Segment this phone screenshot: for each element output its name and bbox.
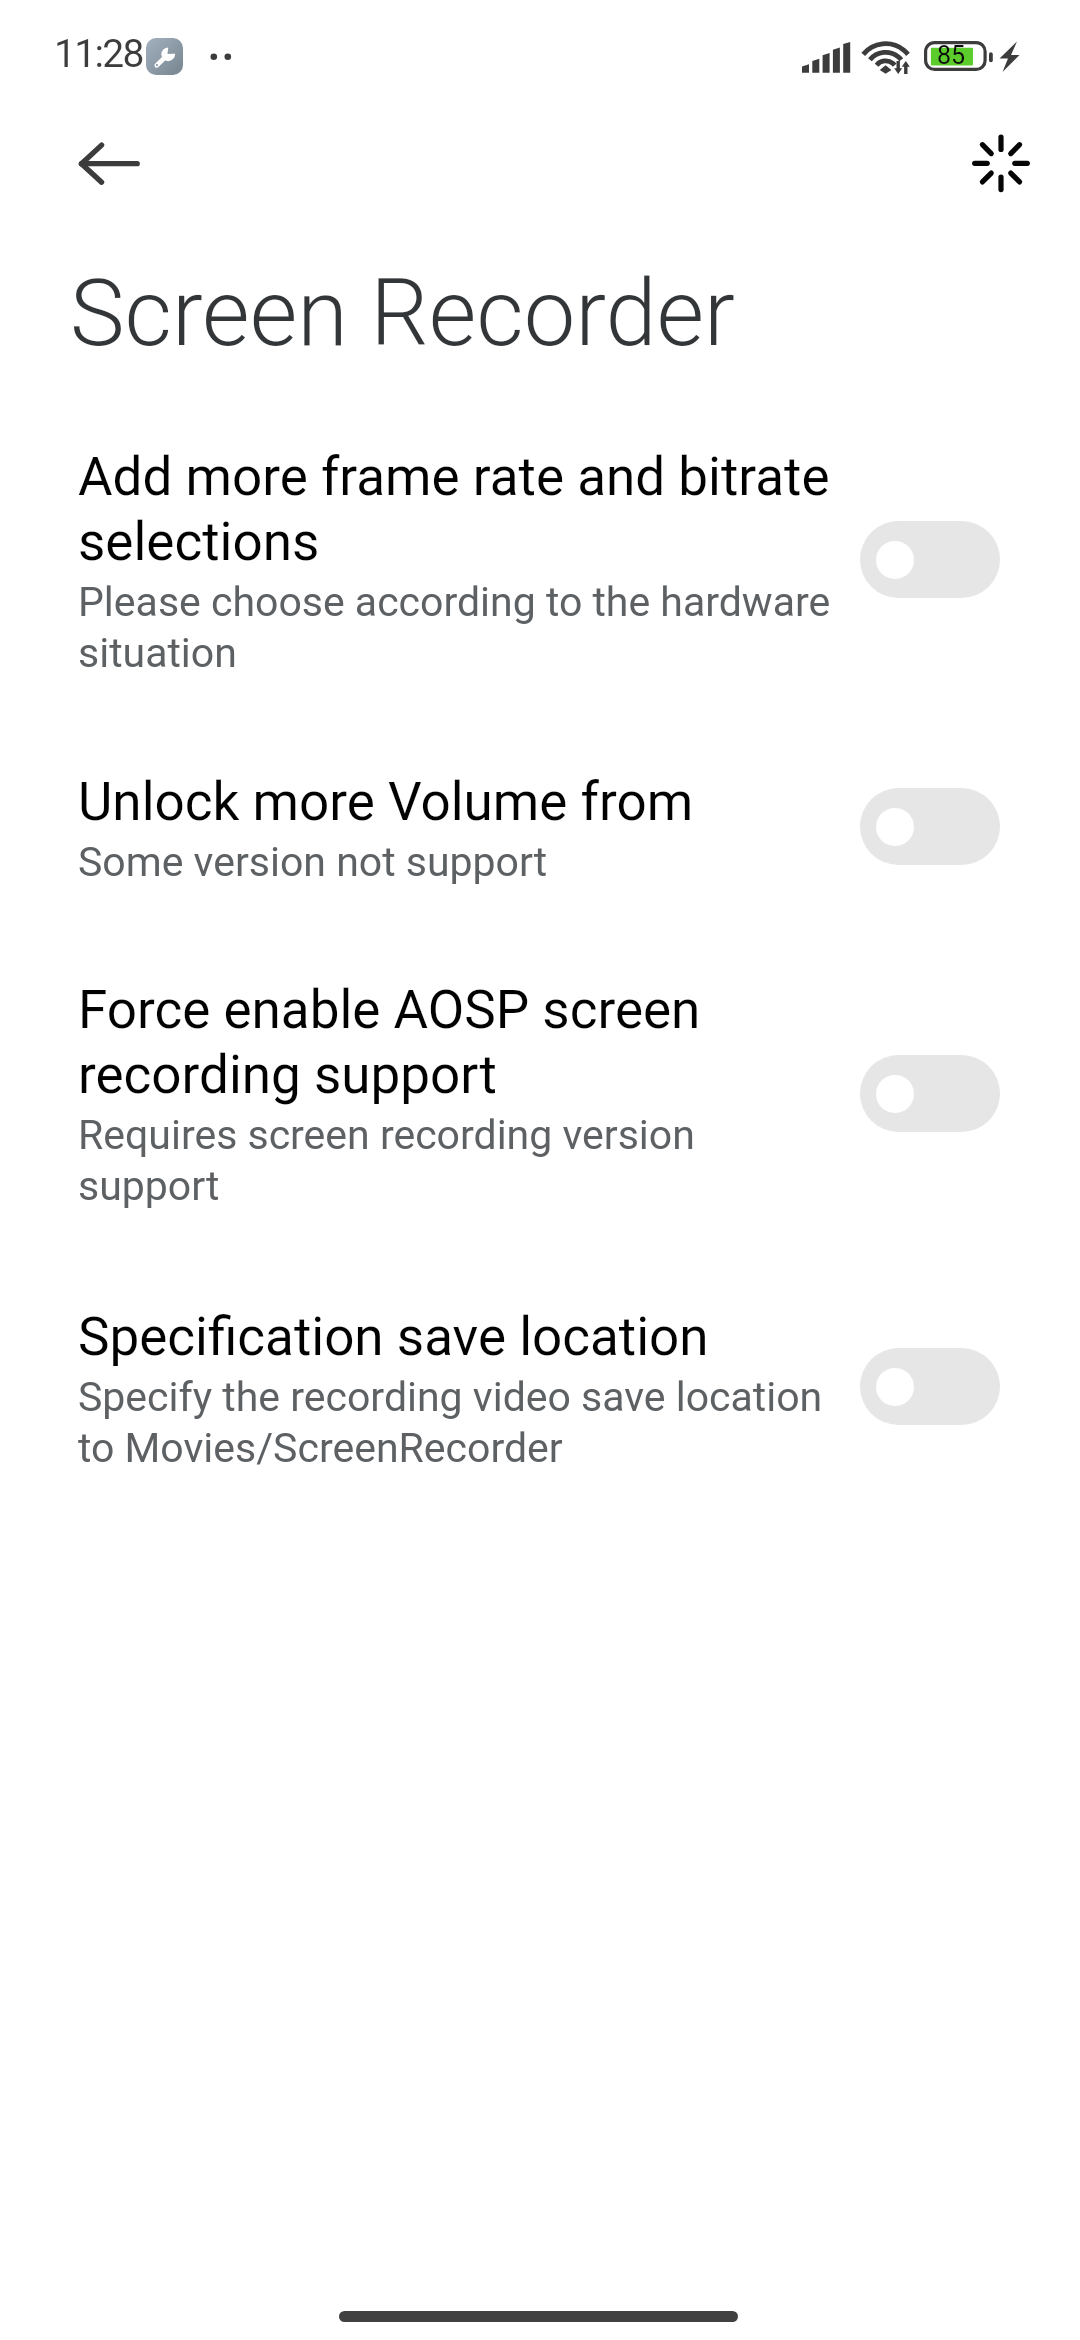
button[interactable]: Loading: [961, 123, 1041, 203]
staticText: Add more frame rate and bitrate selectio…: [78, 444, 830, 574]
button[interactable]: Toggle switch, off: [860, 1348, 1000, 1425]
staticText: 11:28: [54, 31, 143, 76]
button[interactable]: Specification save location: [78, 1304, 848, 1473]
staticText: Some version not support: [78, 836, 548, 887]
staticText: Force enable AOSP screen recording suppo…: [78, 977, 701, 1107]
staticText: Please choose according to the hardware …: [78, 576, 831, 678]
button[interactable]: Toggle switch, off: [860, 1055, 1000, 1132]
button[interactable]: Add more frame rate and bitrate selectio…: [78, 444, 848, 678]
staticText: Unlock more Volume from: [78, 769, 694, 834]
button[interactable]: Back: [56, 129, 148, 199]
staticText: Requires screen recording version suppor…: [78, 1109, 695, 1211]
staticText: Specification save location: [78, 1304, 709, 1369]
button[interactable]: Toggle switch, off: [860, 521, 1000, 598]
staticText: Screen Recorder: [70, 259, 736, 368]
staticText: 85: [937, 42, 966, 70]
button[interactable]: Toggle switch, off: [860, 788, 1000, 865]
staticText: Specify the recording video save locatio…: [78, 1371, 823, 1473]
button[interactable]: Unlock more Volume from: [78, 769, 848, 887]
button[interactable]: Force enable AOSP screen recording suppo…: [78, 977, 848, 1211]
